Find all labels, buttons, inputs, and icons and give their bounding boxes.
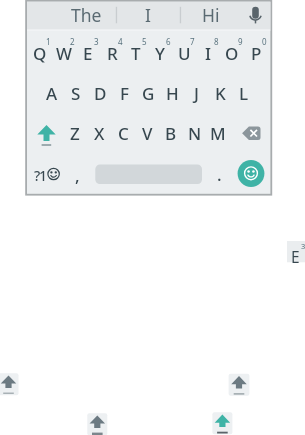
button[interactable]: . [196, 159, 242, 189]
staticText: O [225, 42, 239, 65]
staticText: F [120, 82, 129, 105]
button[interactable]: J [173, 78, 219, 108]
button[interactable]: T [113, 38, 159, 68]
staticText: Y [155, 42, 165, 65]
button[interactable] [229, 374, 250, 396]
button[interactable]: R [89, 38, 135, 68]
button[interactable]: U [161, 38, 207, 68]
button[interactable]: N [172, 118, 218, 148]
staticText: 2 [70, 36, 75, 47]
staticText: 6 [166, 36, 171, 47]
button[interactable]: P [233, 38, 279, 68]
staticText: N [188, 122, 202, 145]
button[interactable] [240, 2, 270, 29]
button[interactable] [95, 153, 202, 192]
staticText: Hi [202, 3, 220, 27]
staticText: A [46, 82, 58, 105]
button[interactable] [28, 153, 65, 192]
staticText: W [56, 42, 72, 65]
button[interactable] [212, 412, 232, 435]
staticText: 0 [262, 36, 267, 47]
staticText: 8 [214, 36, 219, 47]
button[interactable]: G [125, 78, 171, 108]
button[interactable]: F [101, 78, 147, 108]
staticText: 7 [190, 36, 195, 47]
button[interactable]: B [148, 118, 194, 148]
staticText: K [215, 82, 226, 105]
button[interactable]: Y [137, 38, 183, 68]
staticText: , [75, 164, 80, 187]
staticText: 1 [46, 36, 51, 47]
button[interactable]: H [149, 78, 195, 108]
staticText: B [165, 122, 177, 145]
staticText: U [178, 42, 191, 65]
button[interactable]: W [41, 38, 87, 68]
staticText: V [142, 122, 153, 145]
button[interactable]: I [125, 0, 171, 30]
button[interactable]: K [197, 78, 243, 108]
staticText: 4 [118, 36, 123, 47]
staticText: Q [33, 42, 47, 65]
staticText: 1 [39, 166, 48, 185]
button[interactable]: S [53, 78, 99, 108]
staticText: 3 [301, 241, 305, 251]
staticText: M [210, 122, 226, 145]
button[interactable] [238, 113, 270, 152]
staticText: J [194, 82, 199, 105]
staticText: 5 [142, 36, 147, 47]
staticText: Z [70, 122, 80, 145]
button[interactable] [87, 413, 107, 435]
button[interactable]: I [185, 38, 231, 68]
staticText: 3 [94, 36, 99, 47]
button[interactable]: , [54, 160, 100, 190]
button[interactable]: X [76, 118, 122, 148]
button[interactable]: A [29, 78, 75, 108]
staticText: G [142, 82, 155, 105]
staticText: S [71, 82, 81, 105]
button[interactable]: E [272, 241, 305, 271]
button[interactable]: M [195, 118, 241, 148]
staticText: E [291, 246, 300, 267]
button[interactable] [28, 113, 65, 152]
button[interactable]: O [209, 38, 255, 68]
staticText: C [118, 122, 129, 145]
button[interactable] [0, 373, 19, 395]
button[interactable]: D [77, 78, 123, 108]
staticText: L [239, 82, 249, 105]
staticText: I [205, 42, 212, 65]
staticText: I [145, 3, 151, 27]
button[interactable] [237, 153, 270, 192]
staticText: The [71, 3, 102, 27]
button[interactable]: L [221, 78, 267, 108]
staticText: ? [34, 166, 41, 185]
staticText: 9 [238, 36, 243, 47]
staticText: H [166, 82, 179, 105]
staticText: R [107, 42, 118, 65]
staticText: T [131, 42, 141, 65]
staticText: X [94, 122, 105, 145]
staticText: D [94, 82, 107, 105]
button[interactable]: C [100, 118, 146, 148]
button[interactable]: E [65, 38, 111, 68]
button[interactable]: Q [17, 38, 63, 68]
button[interactable]: The [63, 0, 109, 30]
staticText: P [251, 42, 262, 65]
button[interactable]: V [124, 118, 170, 148]
button[interactable]: Hi [188, 0, 234, 30]
staticText: . [217, 163, 222, 186]
staticText: E [83, 42, 93, 65]
button[interactable]: Z [52, 118, 98, 148]
